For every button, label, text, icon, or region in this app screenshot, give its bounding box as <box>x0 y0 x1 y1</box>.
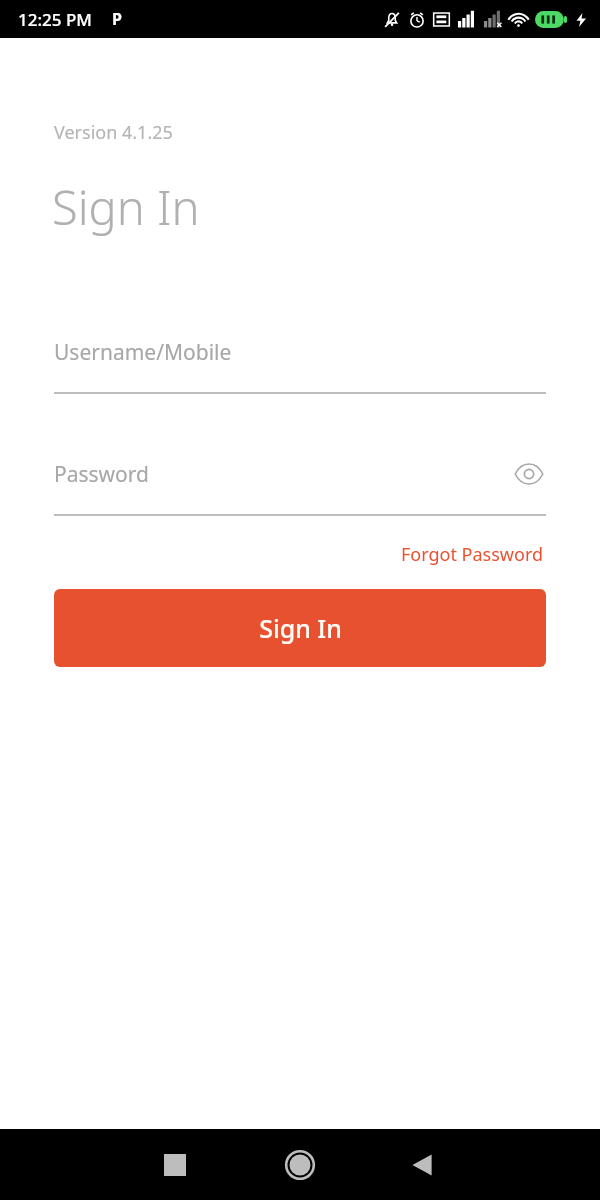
button[interactable]: Username/Mobile <box>54 333 546 394</box>
staticText: Password <box>54 460 149 489</box>
button[interactable]: Show password <box>512 457 546 491</box>
button[interactable]: Home <box>277 1142 323 1188</box>
button[interactable]: Back <box>401 1143 445 1187</box>
button[interactable]: Password <box>54 455 546 516</box>
staticText: Sign In <box>259 611 342 645</box>
staticText: 12:25 PM <box>18 8 92 31</box>
button[interactable]: Forgot Password <box>399 539 546 570</box>
staticText: Forgot Password <box>401 542 544 567</box>
button[interactable]: Recent apps <box>153 1143 197 1187</box>
staticText: Version 4.1.25 <box>54 120 173 145</box>
button[interactable]: Sign In <box>54 589 546 667</box>
staticText: Sign In <box>52 175 200 239</box>
staticText: Username/Mobile <box>54 338 232 367</box>
staticText: P <box>112 8 122 30</box>
